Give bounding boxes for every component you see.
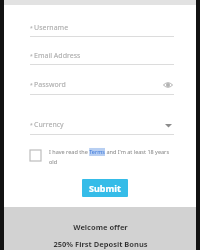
staticText: * Username — [30, 23, 174, 33]
staticText: Submit — [89, 182, 121, 194]
button[interactable]: * Username — [30, 23, 174, 37]
button[interactable]: Select currency — [162, 119, 174, 131]
staticText: Welcome offer — [73, 222, 128, 232]
staticText: * Password — [30, 80, 162, 90]
staticText: 250% First Deposit Bonus — [53, 239, 148, 249]
button[interactable]: * Currency — [30, 119, 174, 135]
staticText: I have read the Terms and I'm at least 1… — [49, 148, 174, 165]
staticText: * Currency — [30, 120, 162, 130]
button[interactable]: I have read the Terms and I'm at least 1… — [30, 148, 174, 165]
staticText: * Email Address — [30, 51, 174, 61]
button[interactable]: Submit — [82, 179, 128, 197]
button[interactable]: Show password — [162, 79, 174, 91]
button[interactable]: * Password — [30, 79, 174, 95]
button[interactable]: * Email Address — [30, 51, 174, 65]
